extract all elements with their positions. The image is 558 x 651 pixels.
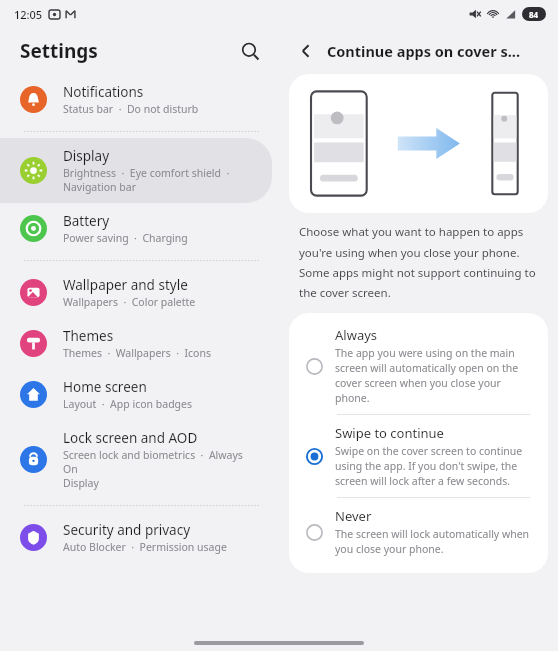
staticText: 84 [529, 9, 539, 20]
button[interactable]: Wallpaper and style [0, 267, 272, 318]
staticText: Status bar · Do not disturb [63, 102, 199, 116]
button[interactable]: Search [235, 36, 265, 66]
staticText: Security and privacy [63, 521, 191, 539]
staticText: Themes · Wallpapers · Icons [63, 346, 211, 360]
staticText: Power saving · Charging [63, 231, 188, 245]
button[interactable]: Never [289, 498, 548, 565]
staticText: Continue apps on cover s... [327, 41, 520, 61]
staticText: Choose what you want to happen to apps y… [299, 224, 538, 300]
button[interactable]: Lock screen and AOD [0, 420, 272, 499]
button[interactable]: Security and privacy [0, 512, 272, 563]
staticText: The screen will lock automatically when … [335, 527, 534, 556]
staticText: Always [335, 326, 378, 344]
button[interactable]: Display [0, 138, 272, 203]
staticText: Screen lock and biometrics · Always On D… [63, 448, 260, 490]
staticText: Settings [20, 38, 235, 64]
staticText: Swipe to continue [335, 424, 444, 442]
staticText: Wallpaper and style [63, 276, 188, 294]
button[interactable]: Swipe to continue [289, 415, 548, 497]
button[interactable]: Always [289, 317, 548, 414]
button[interactable]: Themes [0, 318, 272, 369]
staticText: Auto Blocker · Permission usage [63, 540, 227, 554]
staticText: Battery [63, 212, 110, 230]
staticText: Lock screen and AOD [63, 429, 198, 447]
staticText: Layout · App icon badges [63, 397, 193, 411]
staticText: The app you were using on the main scree… [335, 346, 534, 405]
staticText: Themes [63, 327, 114, 345]
button[interactable]: Back [291, 36, 321, 66]
staticText: 12:05 [14, 7, 43, 22]
staticText: Notifications [63, 83, 144, 101]
staticText: Swipe on the cover screen to continue us… [335, 444, 534, 488]
button[interactable]: Notifications [0, 74, 272, 125]
staticText: Display [63, 147, 110, 165]
button[interactable]: Battery [0, 203, 272, 254]
staticText: Home screen [63, 378, 147, 396]
button[interactable]: Home screen [0, 369, 272, 420]
staticText: Wallpapers · Color palette [63, 295, 196, 309]
staticText: Brightness · Eye comfort shield · Naviga… [63, 166, 230, 194]
staticText: Never [335, 507, 372, 525]
